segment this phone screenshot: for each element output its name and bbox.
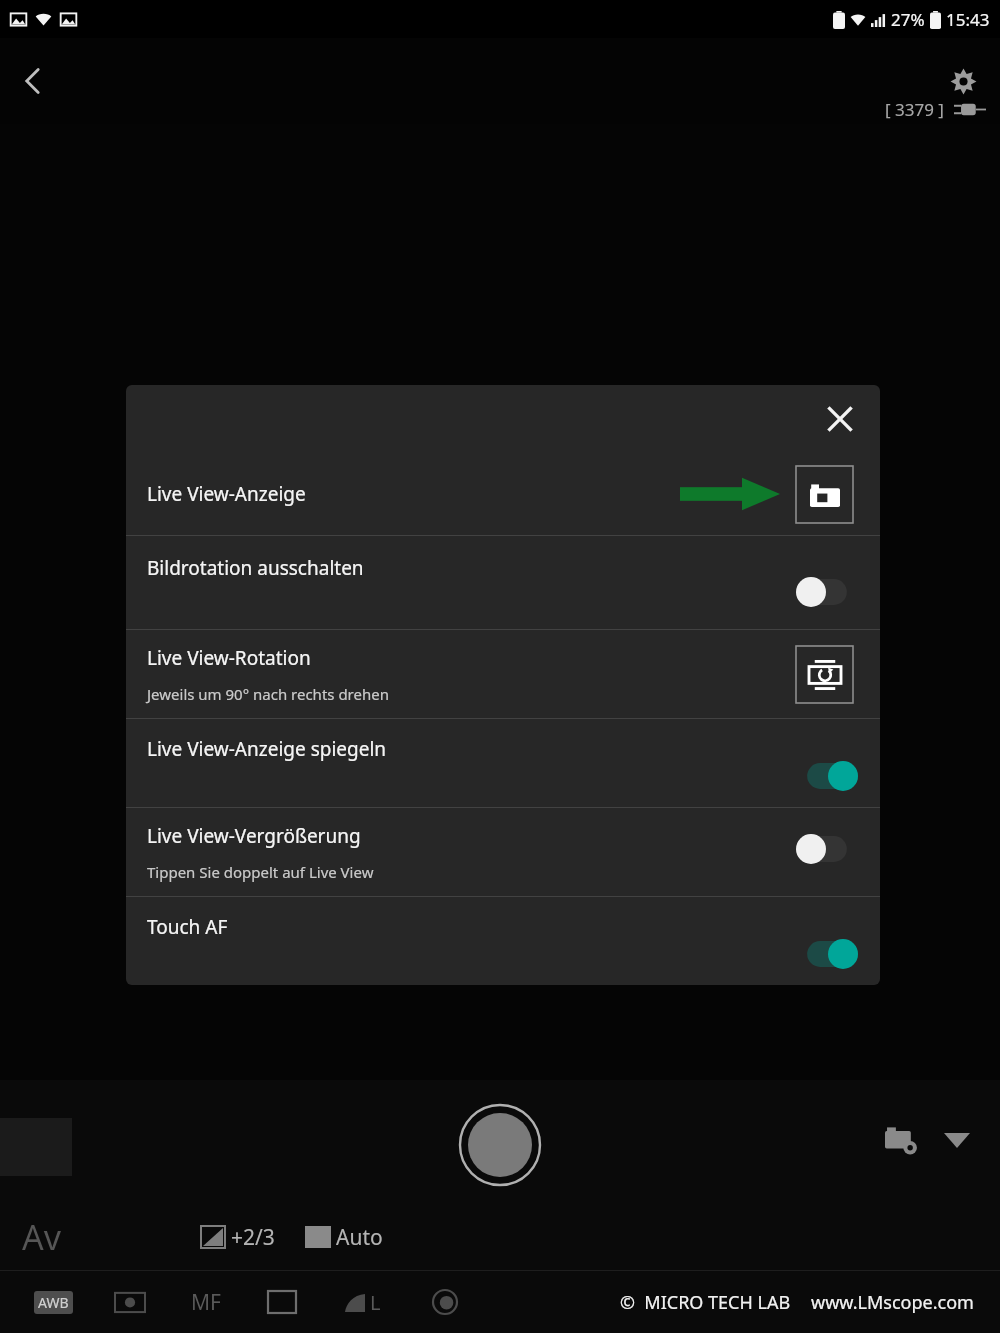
staticText: © MICRO TECH LAB bbox=[620, 1290, 791, 1315]
staticText: Touch AF bbox=[147, 914, 228, 940]
staticText: 27% bbox=[891, 8, 925, 31]
button[interactable]: Expand bbox=[934, 1117, 980, 1163]
staticText: Tippen Sie doppelt auf Live View bbox=[147, 862, 374, 882]
button[interactable]: Live view display bbox=[796, 466, 853, 523]
staticText: www.LMscope.com bbox=[811, 1290, 974, 1315]
staticText: [ 3379 ] bbox=[885, 98, 944, 121]
button[interactable]: White balance bbox=[30, 1284, 76, 1320]
button[interactable]: Image size bbox=[336, 1284, 390, 1320]
staticText: +2/3 bbox=[231, 1223, 275, 1252]
staticText: Av bbox=[22, 1214, 61, 1260]
button[interactable]: Live View-Anzeige spiegeln bbox=[126, 719, 880, 807]
button[interactable]: Aspect ratio bbox=[262, 1282, 302, 1322]
button[interactable]: Shutter bbox=[459, 1104, 541, 1186]
button[interactable]: Touch AF bbox=[126, 897, 880, 985]
button[interactable]: Live View-Vergrößerung bbox=[126, 808, 880, 896]
button[interactable]: Close bbox=[814, 393, 866, 445]
staticText: Live View-Vergrößerung bbox=[147, 823, 361, 849]
button[interactable]: Camera settings bbox=[876, 1114, 928, 1166]
staticText: L bbox=[370, 1289, 381, 1316]
staticText: Auto bbox=[336, 1223, 383, 1252]
button[interactable]: Settings bbox=[934, 52, 992, 110]
staticText: 15:43 bbox=[946, 8, 990, 31]
staticText: MF bbox=[191, 1288, 221, 1317]
button[interactable]: Live View-Rotation bbox=[126, 630, 880, 718]
staticText: Live View-Anzeige spiegeln bbox=[147, 736, 387, 762]
button[interactable]: Rotate live view bbox=[796, 646, 853, 703]
button[interactable]: Bildrotation ausschalten bbox=[126, 536, 880, 629]
button[interactable]: Drive mode bbox=[424, 1281, 466, 1323]
staticText: Live View-Anzeige bbox=[147, 481, 306, 507]
staticText: Jeweils um 90° nach rechts drehen bbox=[147, 684, 389, 704]
button[interactable]: Live View-Anzeige bbox=[126, 453, 880, 535]
staticText: Bildrotation ausschalten bbox=[147, 555, 364, 581]
button[interactable]: Manual focus bbox=[184, 1284, 228, 1320]
staticText: AWB bbox=[38, 1293, 69, 1312]
button[interactable]: Back bbox=[4, 52, 62, 110]
button[interactable]: Metering bbox=[110, 1282, 150, 1322]
staticText: Live View-Rotation bbox=[147, 645, 311, 671]
